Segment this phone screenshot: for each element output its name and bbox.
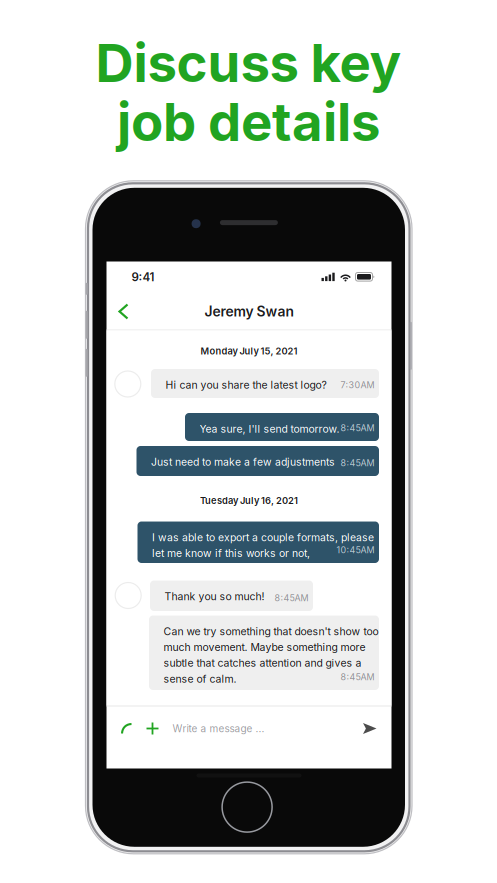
staticText: much movement. Maybe something more xyxy=(163,641,365,654)
button[interactable]: Call xyxy=(119,721,133,735)
button[interactable]: Add attachment xyxy=(145,721,159,735)
staticText: Jeremy Swan xyxy=(204,303,293,320)
staticText: 7:30AM xyxy=(340,379,374,390)
staticText: let me know if this works or not, xyxy=(152,547,310,560)
staticText: Hi can you share the latest logo? xyxy=(165,378,326,391)
staticText: Yea sure, I'll send tomorrow. xyxy=(199,422,339,435)
staticText: sense of calm. xyxy=(163,673,236,685)
staticText: 8:45AM xyxy=(340,457,374,468)
staticText: subtle that catches attention and gives … xyxy=(163,657,361,669)
staticText: 10:45AM xyxy=(336,544,374,555)
staticText: 8:45AM xyxy=(274,592,308,603)
staticText: 9:41 xyxy=(131,270,154,284)
staticText: Can we try something that doesn't show t… xyxy=(163,625,378,638)
staticText: Tuesday July 16, 2021 xyxy=(200,495,298,506)
button[interactable]: Send xyxy=(362,722,377,734)
staticText: Just need to make a few adjustments xyxy=(151,455,335,468)
staticText: 8:45AM xyxy=(340,422,374,433)
staticText: I was able to export a couple formats, p… xyxy=(152,531,374,544)
staticText: Thank you so much! xyxy=(164,590,264,603)
staticText: 8:45AM xyxy=(340,671,374,682)
staticText: Write a message ... xyxy=(172,722,264,735)
staticText: job details xyxy=(117,90,380,154)
staticText: Discuss key xyxy=(95,31,401,95)
button[interactable]: Back xyxy=(106,292,140,330)
staticText: Monday July 15, 2021 xyxy=(200,345,297,357)
